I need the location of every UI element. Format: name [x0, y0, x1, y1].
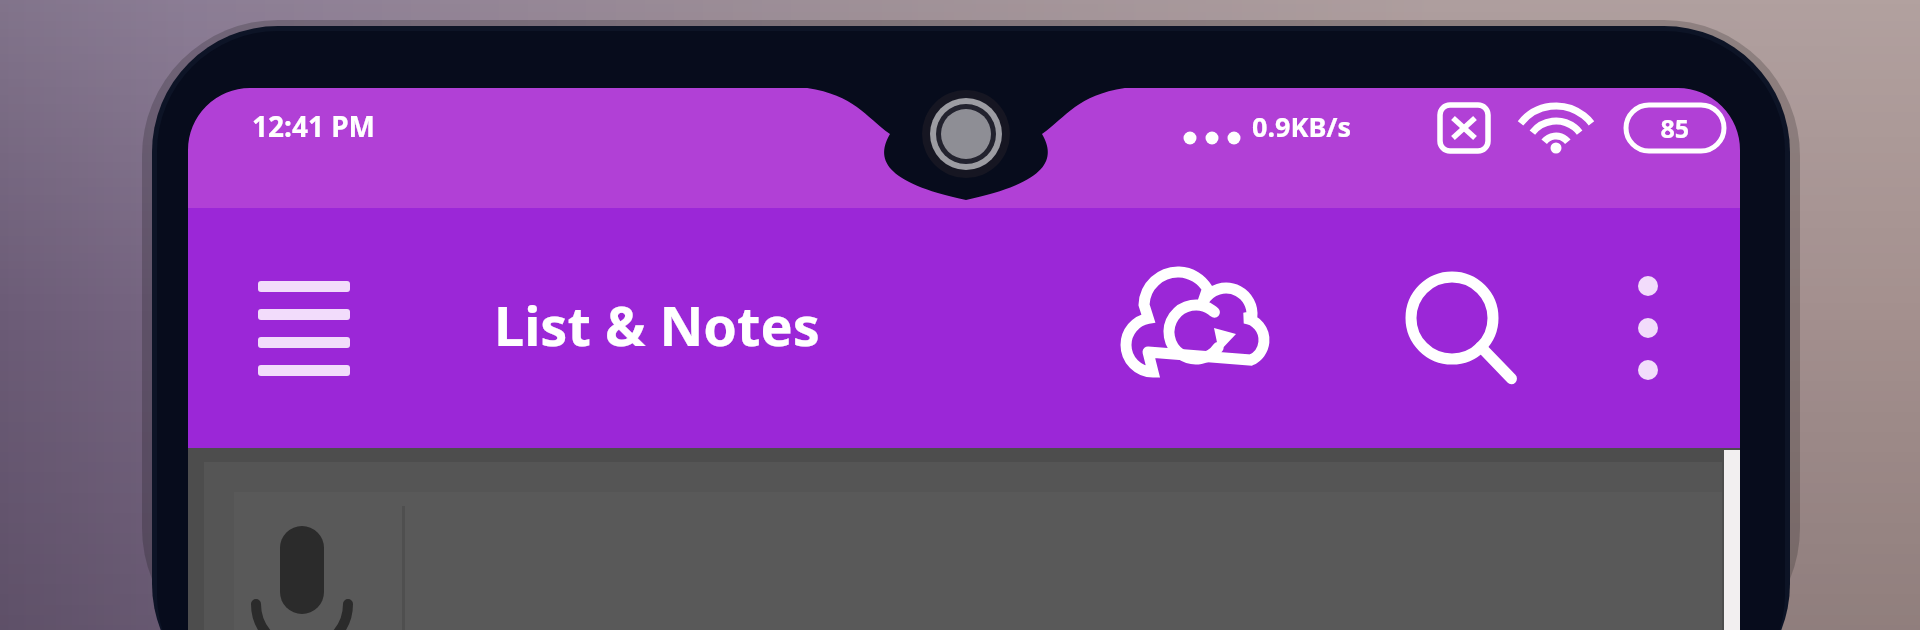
button[interactable]: Search: [1390, 260, 1520, 400]
button[interactable]: Open navigation menu: [230, 270, 380, 390]
button[interactable]: More options: [1600, 260, 1700, 400]
button[interactable]: Sync with cloud: [1150, 260, 1280, 400]
button[interactable]: Voice input: [240, 500, 370, 630]
